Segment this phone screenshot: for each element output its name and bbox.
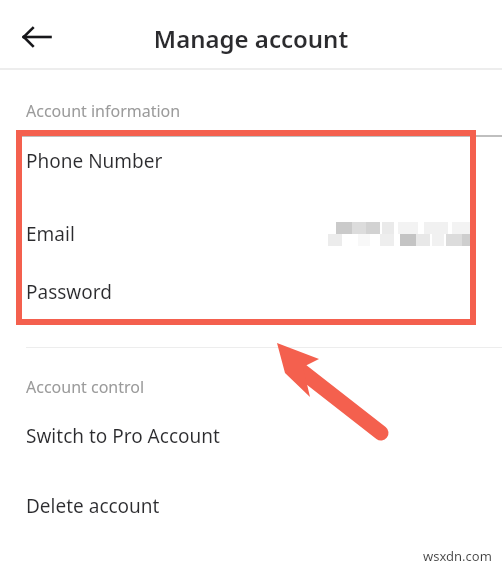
staticText: Email	[26, 221, 75, 247]
staticText: Manage account	[0, 22, 502, 55]
staticText: Delete account	[26, 493, 160, 519]
staticText: Switch to Pro Account	[26, 423, 220, 449]
staticText: Password	[26, 279, 112, 305]
button[interactable]: Back	[9, 9, 65, 65]
staticText: Account control	[26, 376, 145, 398]
button[interactable]: Password	[0, 268, 502, 316]
staticText: wsxdn.com	[423, 547, 492, 565]
staticText: Account information	[26, 100, 181, 122]
button[interactable]: Delete account	[0, 482, 502, 530]
button[interactable]: Switch to Pro Account	[0, 412, 502, 460]
button[interactable]: Phone Number	[0, 137, 502, 185]
staticText: Phone Number	[26, 148, 163, 174]
button[interactable]: Email	[0, 200, 502, 268]
